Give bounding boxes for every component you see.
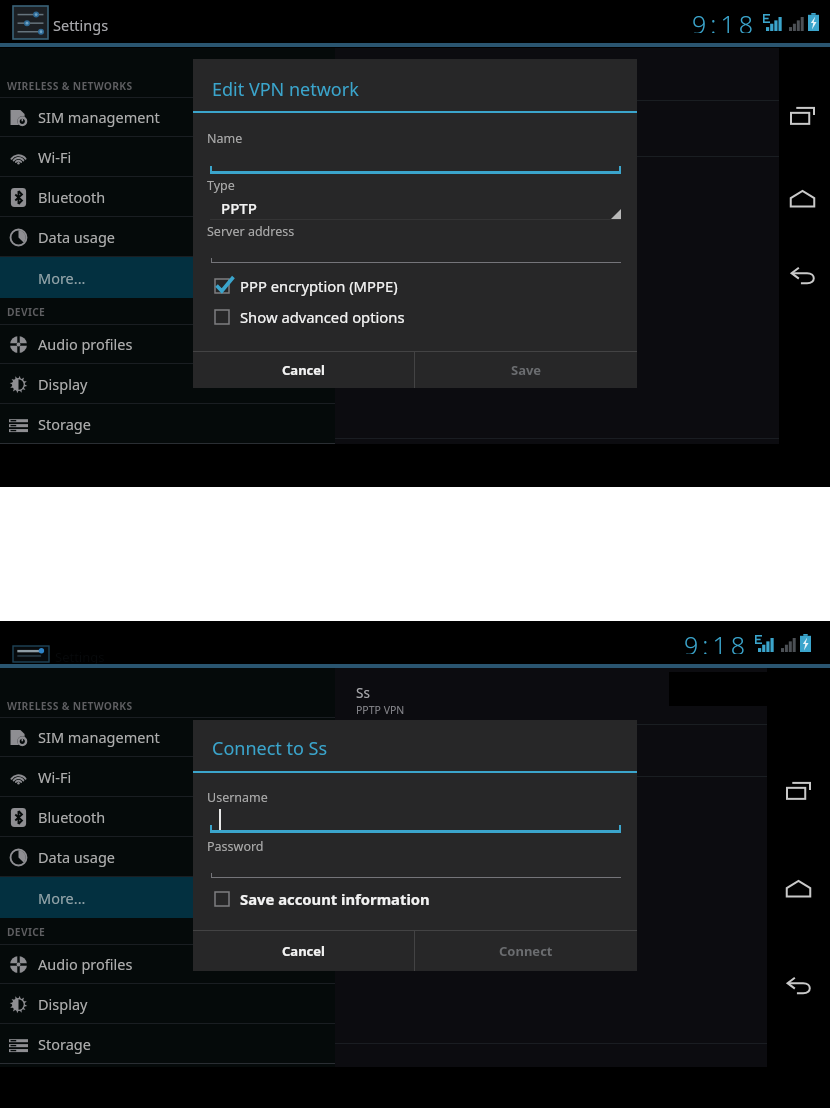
staticText: Cancel xyxy=(282,361,325,379)
button[interactable]: Display xyxy=(0,364,335,404)
button[interactable]: More... xyxy=(0,877,335,918)
button[interactable]: Cancel xyxy=(193,931,414,971)
staticText: Wi-Fi xyxy=(38,767,72,787)
button[interactable]: Display xyxy=(0,984,335,1024)
button[interactable]: Cancel xyxy=(193,352,414,388)
button[interactable]: Save xyxy=(415,352,637,388)
staticText: PPTP xyxy=(221,198,257,218)
button[interactable]: More... xyxy=(0,257,335,298)
staticText: Cancel xyxy=(282,942,325,960)
staticText: Data usage xyxy=(38,847,115,867)
staticText: DEVICE xyxy=(7,305,46,319)
staticText: WIRELESS & NETWORKS xyxy=(7,79,133,93)
staticText: Audio profiles xyxy=(38,334,133,354)
staticText: More... xyxy=(38,888,86,908)
button[interactable]: Back xyxy=(774,964,823,1008)
staticText: SIM management xyxy=(38,727,160,747)
staticText: Display xyxy=(38,374,88,394)
staticText: Edit VPN network xyxy=(212,77,359,102)
button[interactable]: Save account information xyxy=(193,885,637,913)
staticText: Password xyxy=(207,838,264,855)
staticText: WIRELESS & NETWORKS xyxy=(7,699,133,713)
button[interactable]: Audio profiles xyxy=(0,944,335,984)
staticText: More... xyxy=(38,268,86,288)
staticText: Connect xyxy=(499,942,553,960)
button[interactable]: Recents xyxy=(782,93,823,137)
staticText: Display xyxy=(38,994,88,1014)
button[interactable]: Bluetooth xyxy=(0,797,335,837)
button[interactable]: Home xyxy=(782,176,823,220)
button[interactable]: Home xyxy=(774,866,823,910)
staticText: Name xyxy=(207,130,243,147)
button[interactable]: Back xyxy=(782,254,823,298)
staticText: PPP encryption (MPPE) xyxy=(240,276,398,296)
staticText: Storage xyxy=(38,414,91,434)
button[interactable]: Audio profiles xyxy=(0,324,335,364)
button[interactable]: Wi-Fi xyxy=(0,137,335,177)
button[interactable]: PPP encryption (MPPE) xyxy=(193,272,637,300)
staticText: SIM management xyxy=(38,107,160,127)
staticText: DEVICE xyxy=(7,925,46,939)
button[interactable]: SIM management xyxy=(0,97,335,137)
button[interactable]: Connect xyxy=(415,931,637,971)
staticText: Settings xyxy=(55,648,105,666)
staticText: Storage xyxy=(38,1034,91,1054)
button[interactable]: Wi-Fi xyxy=(0,757,335,797)
button[interactable]: Storage xyxy=(0,1024,335,1064)
button[interactable]: Recents xyxy=(774,768,823,812)
button[interactable]: Data usage xyxy=(0,217,335,257)
staticText: Data usage xyxy=(38,227,115,247)
staticText: 9:18 xyxy=(692,7,757,33)
staticText: Bluetooth xyxy=(38,807,106,827)
staticText: Wi-Fi xyxy=(38,147,72,167)
staticText: Settings xyxy=(53,15,109,35)
staticText: 9:18 xyxy=(684,628,749,654)
staticText: Audio profiles xyxy=(38,954,133,974)
staticText: Bluetooth xyxy=(38,187,106,207)
staticText: PPTP VPN xyxy=(356,703,405,717)
button[interactable]: Data usage xyxy=(0,837,335,877)
button[interactable]: Storage xyxy=(0,404,335,444)
button[interactable]: SIM management xyxy=(0,717,335,757)
staticText: Username xyxy=(207,789,268,806)
staticText: Ss xyxy=(356,684,370,702)
staticText: Connect to Ss xyxy=(212,736,328,761)
staticText: Save xyxy=(511,361,542,379)
staticText: Type xyxy=(207,177,235,194)
staticText: Save account information xyxy=(240,889,430,909)
staticText: Server address xyxy=(207,223,295,240)
button[interactable]: Show advanced options xyxy=(193,303,637,331)
button[interactable]: Bluetooth xyxy=(0,177,335,217)
staticText: Show advanced options xyxy=(240,307,405,327)
